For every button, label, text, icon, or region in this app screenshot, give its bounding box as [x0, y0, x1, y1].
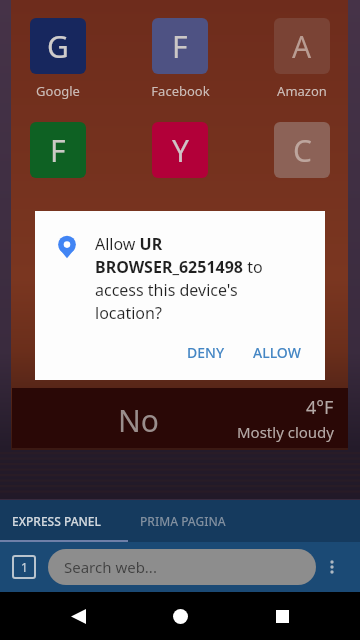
- button[interactable]: No: [12, 388, 348, 448]
- button[interactable]: Back: [54, 592, 102, 640]
- staticText: Amazon: [277, 82, 327, 100]
- button[interactable]: Tabs: [12, 555, 36, 579]
- button[interactable]: G: [24, 18, 92, 100]
- button[interactable]: A: [268, 18, 336, 100]
- staticText: ALLOW: [253, 343, 301, 362]
- button[interactable]: F: [146, 18, 214, 100]
- button[interactable]: ALLOW: [243, 335, 311, 370]
- staticText: Facebook: [151, 82, 210, 100]
- staticText: PRIMA PAGINA: [140, 513, 226, 529]
- staticText: G: [47, 26, 69, 67]
- staticText: C: [293, 130, 312, 171]
- button[interactable]: F: [24, 122, 92, 178]
- staticText: 4°F: [306, 395, 334, 420]
- staticText: Google: [36, 82, 80, 100]
- button[interactable]: C: [268, 122, 336, 178]
- staticText: DENY: [187, 343, 225, 362]
- staticText: Allow UR BROWSER_6251498 to access this …: [95, 233, 307, 324]
- staticText: 1: [21, 559, 28, 575]
- button[interactable]: PRIMA PAGINA: [128, 500, 258, 542]
- button[interactable]: Y: [146, 122, 214, 178]
- button[interactable]: Search web...: [48, 549, 316, 585]
- staticText: A: [292, 26, 312, 67]
- staticText: F: [172, 26, 188, 67]
- button[interactable]: Recent apps: [258, 592, 306, 640]
- staticText: No: [118, 400, 159, 441]
- staticText: Y: [172, 130, 189, 171]
- button[interactable]: Home: [156, 592, 204, 640]
- staticText: EXPRESS PANEL: [12, 513, 101, 529]
- staticText: Search web...: [64, 557, 157, 577]
- button[interactable]: DENY: [177, 335, 235, 370]
- button[interactable]: More options: [316, 542, 348, 592]
- staticText: F: [50, 130, 66, 171]
- button[interactable]: EXPRESS PANEL: [0, 500, 128, 542]
- staticText: Mostly cloudy: [237, 422, 334, 442]
